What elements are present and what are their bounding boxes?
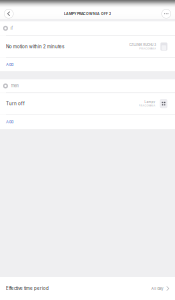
staticText: Lampy (145, 100, 156, 104)
button[interactable]: Add (0, 58, 175, 71)
button[interactable]: Effective time period (0, 277, 175, 300)
staticText: Effective time period (6, 286, 49, 291)
button[interactable]: Add (0, 115, 175, 129)
button[interactable]: No motion within 2 minutes (0, 36, 175, 57)
staticText: PRACOWNIA (139, 47, 156, 50)
staticText: Add (6, 62, 13, 67)
staticText: Add (6, 119, 13, 124)
staticText: CZUJNIK RUCHU 3 (129, 43, 156, 46)
staticText: Then (11, 84, 19, 88)
staticText: LAMPY PRACOWNIA OFF 2 (64, 12, 111, 16)
button[interactable]: More options (157, 4, 175, 23)
staticText: Turn off (6, 101, 25, 106)
button[interactable]: Back (0, 4, 17, 23)
button[interactable]: Turn off (0, 93, 175, 114)
staticText: All day (151, 286, 163, 291)
staticText: If (11, 26, 13, 31)
staticText: No motion within 2 minutes (6, 44, 64, 49)
staticText: PRACOWNIA (139, 104, 156, 107)
